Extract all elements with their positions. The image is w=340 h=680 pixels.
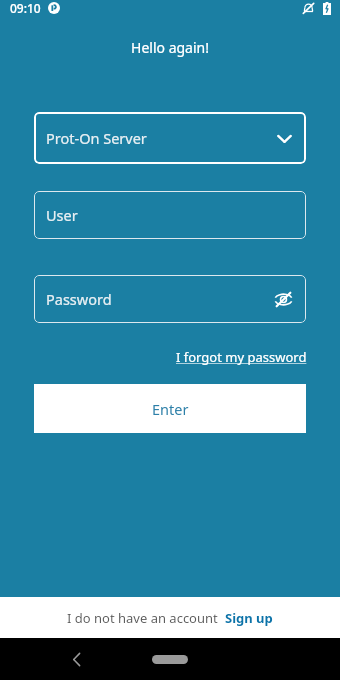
button[interactable]: Back — [64, 647, 88, 671]
staticText: Enter — [152, 399, 189, 419]
other: Notifications off — [302, 2, 315, 15]
staticText: I do not have an account — [67, 609, 218, 627]
staticText: Password — [46, 289, 112, 309]
staticText: User — [46, 205, 78, 225]
button[interactable]: User — [34, 191, 306, 239]
button[interactable]: Prot-On Server — [34, 112, 306, 164]
other: Battery — [323, 2, 331, 15]
button[interactable]: I forgot my password — [176, 348, 307, 366]
staticText: 09:10 — [10, 0, 41, 16]
staticText: Hello again! — [0, 38, 340, 57]
button[interactable]: Home — [152, 655, 188, 664]
button[interactable]: Show password — [271, 287, 295, 311]
staticText: Sign up — [225, 609, 273, 627]
other: Expand server list — [274, 128, 294, 148]
button[interactable]: Enter — [34, 384, 306, 433]
staticText: I forgot my password — [176, 348, 307, 366]
staticText: Prot-On Server — [46, 128, 147, 148]
button[interactable]: Password — [34, 275, 306, 323]
button[interactable]: Sign up — [225, 609, 273, 627]
